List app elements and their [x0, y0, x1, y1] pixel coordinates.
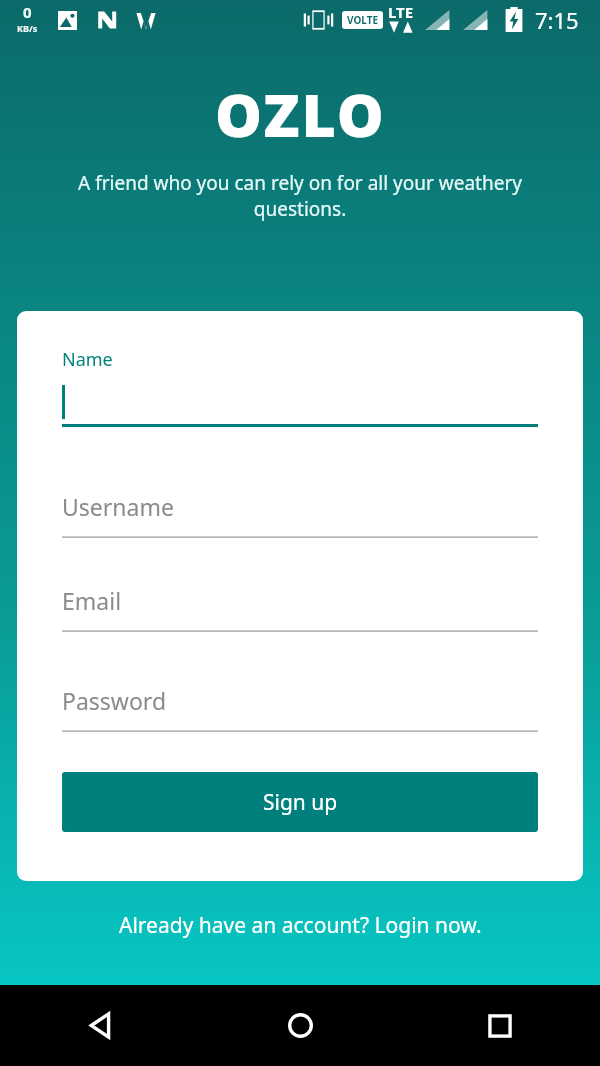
button[interactable]: Home: [200, 985, 400, 1066]
staticText: LTE: [388, 2, 414, 22]
staticText: A friend who you can rely on for all you…: [42, 170, 558, 222]
staticText: 7:15: [535, 5, 579, 35]
staticText: Email: [62, 585, 122, 616]
staticText: Password: [62, 685, 167, 716]
button[interactable]: Back: [0, 985, 200, 1066]
button[interactable]: Recent apps: [400, 985, 600, 1066]
staticText: KB/s: [17, 22, 38, 34]
staticText: Username: [62, 491, 174, 522]
button[interactable]: [62, 375, 538, 427]
staticText: Name: [62, 347, 113, 372]
button[interactable]: Username: [62, 488, 538, 538]
staticText: Sign up: [263, 788, 338, 817]
button[interactable]: Email: [62, 582, 538, 632]
staticText: OZLO: [215, 74, 386, 154]
staticText: VOLTE: [347, 13, 379, 27]
staticText: 0: [23, 2, 32, 22]
staticText: Already have an account? Login now.: [119, 911, 482, 940]
button[interactable]: Password: [62, 682, 538, 732]
button[interactable]: Already have an account? Login now.: [0, 902, 600, 948]
button[interactable]: Sign up: [62, 772, 538, 832]
